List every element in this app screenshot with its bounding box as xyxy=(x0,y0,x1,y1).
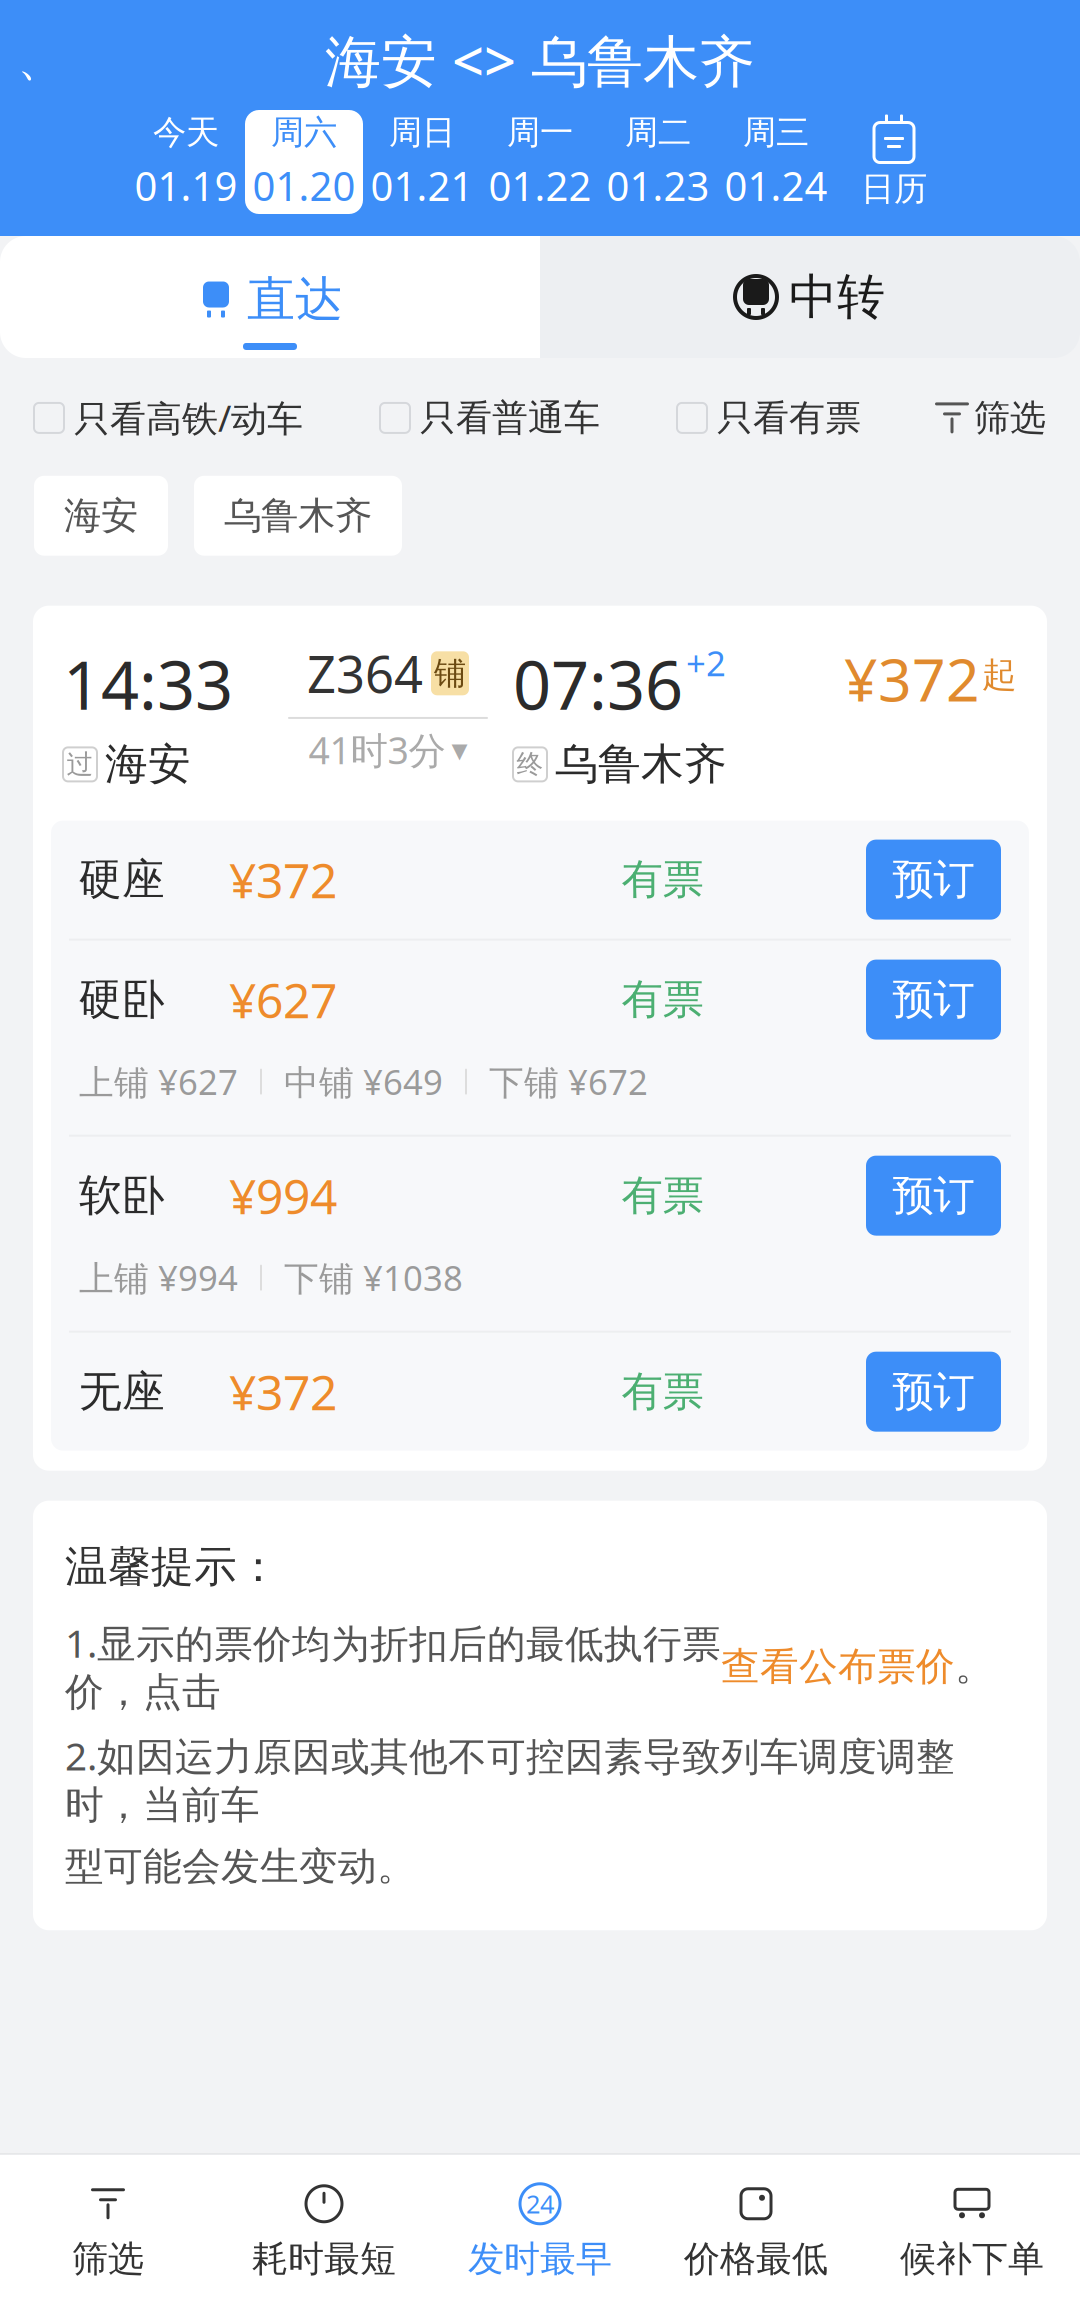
staticText: 有票 xyxy=(621,1170,703,1221)
staticText: 候补下单 xyxy=(900,2237,1044,2281)
button[interactable]: 只看有票 xyxy=(677,396,861,440)
staticText: 24 xyxy=(526,2187,554,2221)
button[interactable]: 返回 xyxy=(0,20,80,100)
staticText: 软卧 xyxy=(79,1169,165,1222)
staticText: 预订 xyxy=(892,974,974,1025)
staticText: 上铺 ¥627 xyxy=(79,1059,238,1105)
staticText: ¥372 xyxy=(844,640,980,718)
button[interactable]: 周二 xyxy=(599,110,717,214)
button[interactable]: 周六 xyxy=(245,110,363,214)
button[interactable]: 筛选 xyxy=(0,2167,216,2295)
staticText: 周三 xyxy=(743,112,809,153)
staticText: 耗时最短 xyxy=(252,2237,396,2281)
staticText: ¥994 xyxy=(229,1164,337,1227)
staticText: 01.23 xyxy=(606,159,709,212)
staticText: ¥372 xyxy=(229,1360,337,1423)
staticText: 海安 xyxy=(105,738,191,791)
staticText: 无座 xyxy=(79,1365,165,1418)
staticText: 下铺 ¥672 xyxy=(489,1059,648,1105)
button[interactable]: 周日 xyxy=(363,110,481,214)
staticText: 乌鲁木齐 xyxy=(555,738,727,791)
button[interactable]: 乌鲁木齐 xyxy=(194,476,402,556)
staticText: 14:33 xyxy=(63,640,233,728)
button[interactable]: 预订 xyxy=(866,840,1001,920)
staticText: 预订 xyxy=(892,1170,974,1221)
staticText: 筛选 xyxy=(72,2237,144,2281)
staticText: 只看高铁/动车 xyxy=(74,394,303,442)
staticText: 温馨提示： xyxy=(65,1541,280,1593)
button[interactable]: 预订 xyxy=(866,960,1001,1040)
staticText: Z364 xyxy=(307,640,423,707)
button[interactable]: 预订 xyxy=(866,1352,1001,1432)
staticText: ▾ xyxy=(451,732,467,768)
staticText: 周日 xyxy=(389,112,455,153)
staticText: 海安 xyxy=(64,493,138,539)
staticText: 41时3分 xyxy=(308,725,445,774)
staticText: 只看有票 xyxy=(717,396,861,440)
staticText: 铺 xyxy=(434,654,466,693)
button[interactable]: 周三 xyxy=(717,110,835,214)
button[interactable]: 筛选 xyxy=(938,396,1046,440)
staticText: 日历 xyxy=(861,168,927,209)
staticText: 01.22 xyxy=(488,159,591,212)
staticText: ¥372 xyxy=(229,848,337,911)
staticText: 直达 xyxy=(247,270,343,329)
staticText: 01.24 xyxy=(724,159,827,212)
staticText: +2 xyxy=(686,640,726,686)
button[interactable]: 中转 xyxy=(540,236,1080,358)
button[interactable]: 候补下单 xyxy=(864,2167,1080,2295)
staticText: 有票 xyxy=(621,1366,703,1417)
button[interactable]: 耗时最短 xyxy=(216,2167,432,2295)
staticText: ¥627 xyxy=(229,968,337,1031)
staticText: 01.21 xyxy=(370,159,473,212)
staticText: 2.如因运力原因或其他不可控因素导致列车调度调整时，当前车 xyxy=(65,1730,955,1829)
staticText: 预订 xyxy=(892,854,974,905)
staticText: 终 xyxy=(516,748,543,781)
staticText: 01.19 xyxy=(134,159,237,212)
button[interactable]: 只看高铁/动车 xyxy=(34,394,303,442)
staticText: 型可能会发生变动。 xyxy=(65,1843,416,1890)
staticText: 中转 xyxy=(789,267,885,326)
staticText: 、 xyxy=(17,32,62,88)
button[interactable]: 海安 xyxy=(34,476,168,556)
staticText: 起 xyxy=(982,654,1017,696)
staticText: 上铺 ¥994 xyxy=(79,1255,238,1301)
staticText: 有票 xyxy=(621,974,703,1025)
staticText: 预订 xyxy=(892,1366,974,1417)
staticText: 海安 <> 乌鲁木齐 xyxy=(325,23,755,97)
staticText: 中铺 ¥649 xyxy=(284,1059,443,1105)
staticText: 。 xyxy=(955,1643,994,1690)
button[interactable]: 只看普通车 xyxy=(380,396,600,440)
staticText: 有票 xyxy=(621,854,703,905)
staticText: 只看普通车 xyxy=(420,396,600,440)
button[interactable]: 价格最低 xyxy=(648,2167,864,2295)
button[interactable]: 今天 xyxy=(127,110,245,214)
button[interactable]: 直达 xyxy=(0,236,540,358)
staticText: 过 xyxy=(66,748,93,781)
staticText: 周六 xyxy=(271,112,337,153)
staticText: 硬卧 xyxy=(79,973,165,1026)
staticText: 硬座 xyxy=(79,853,165,906)
staticText: 乌鲁木齐 xyxy=(224,493,372,539)
button[interactable]: 预订 xyxy=(866,1156,1001,1236)
staticText: 价格最低 xyxy=(684,2237,828,2281)
button[interactable]: 24 xyxy=(432,2167,648,2295)
staticText: 今天 xyxy=(153,112,219,153)
staticText: 07:36 xyxy=(513,640,683,728)
button[interactable]: 周一 xyxy=(481,110,599,214)
staticText: 查看公布票价 xyxy=(721,1643,955,1690)
staticText: 发时最早 xyxy=(468,2237,612,2281)
staticText: 周二 xyxy=(625,112,691,153)
staticText: 周一 xyxy=(507,112,573,153)
staticText: 筛选 xyxy=(974,396,1046,440)
staticText: 1.显示的票价均为折扣后的最低执行票价，点击 xyxy=(65,1617,721,1716)
button[interactable]: 日历 xyxy=(835,110,953,214)
staticText: 下铺 ¥1038 xyxy=(284,1255,463,1301)
staticText: 01.20 xyxy=(252,159,355,212)
